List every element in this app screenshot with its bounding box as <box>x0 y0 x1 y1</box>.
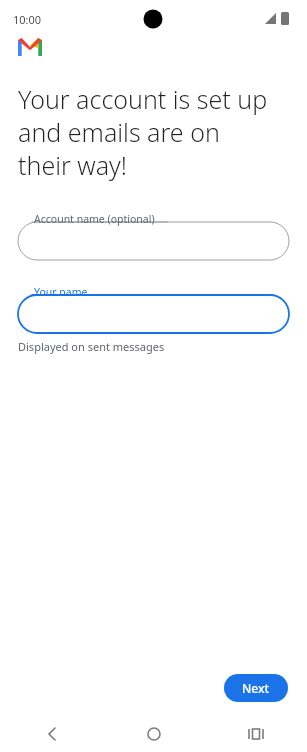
button[interactable]: Account name (optional) <box>18 212 289 260</box>
button[interactable]: Next <box>224 674 288 702</box>
staticText: Displayed on sent messages <box>18 339 165 354</box>
staticText: Next <box>242 680 270 696</box>
button[interactable]: Recents <box>205 715 307 752</box>
button[interactable]: Your name <box>18 285 289 333</box>
staticText: Your name <box>34 285 88 299</box>
button[interactable]: Home <box>103 715 205 752</box>
button[interactable]: Back <box>0 715 103 752</box>
staticText: Your account is set up and emails are on… <box>18 82 277 182</box>
staticText: 10:00 <box>13 12 42 27</box>
staticText: Account name (optional) <box>34 212 155 226</box>
